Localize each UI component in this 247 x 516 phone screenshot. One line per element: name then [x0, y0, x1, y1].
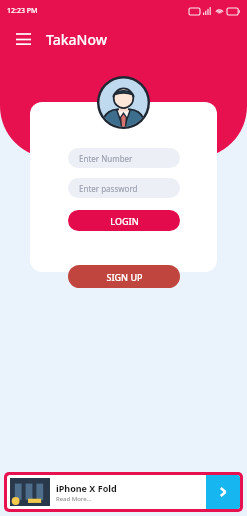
- button[interactable]: LOGIN: [68, 210, 180, 231]
- staticText: 12:23 PM: [7, 6, 38, 16]
- button[interactable]: iPhone X Fold: [4, 472, 243, 512]
- staticText: Enter password: [79, 183, 138, 194]
- staticText: TakaNow: [46, 30, 108, 49]
- staticText: Enter Number: [79, 153, 133, 164]
- staticText: Read More...: [56, 495, 92, 503]
- staticText: LOGIN: [110, 215, 139, 227]
- button[interactable]: SIGN UP: [68, 265, 180, 288]
- staticText: iPhone X Fold: [56, 482, 117, 494]
- button[interactable]: Open ad: [206, 475, 240, 509]
- button[interactable]: Enter Number: [68, 148, 180, 168]
- button[interactable]: Enter password: [68, 178, 180, 198]
- button[interactable]: Open navigation menu: [8, 24, 38, 54]
- staticText: SIGN UP: [106, 271, 143, 283]
